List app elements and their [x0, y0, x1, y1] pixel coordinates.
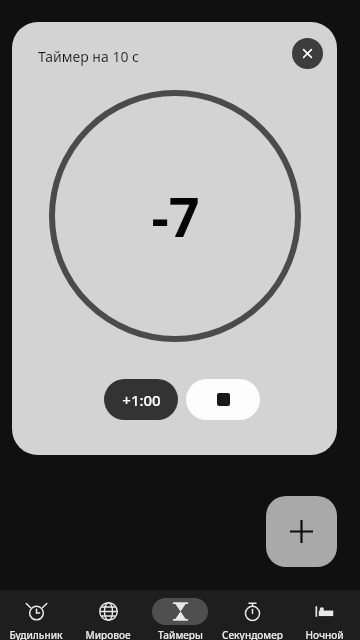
button[interactable]: Add timer [266, 496, 337, 567]
staticText: +1:00 [122, 390, 161, 410]
staticText: Таймеры [158, 628, 203, 640]
button[interactable]: +1:00 [104, 379, 178, 420]
button[interactable]: Ночной [288, 590, 360, 640]
staticText: -7 [151, 179, 200, 253]
button[interactable]: Мировое [72, 590, 144, 640]
staticText: Секундомер [222, 628, 283, 640]
button[interactable]: Таймер на 10 с [12, 22, 337, 455]
staticText: Ночной [305, 628, 344, 640]
button[interactable]: Будильник [0, 590, 72, 640]
staticText: Мировое [85, 628, 131, 640]
staticText: Будильник [9, 628, 63, 640]
button[interactable]: Таймеры [144, 590, 216, 640]
staticText: Таймер на 10 с [38, 47, 139, 66]
button[interactable]: Close [292, 38, 323, 69]
button[interactable]: Stop [186, 379, 260, 420]
button[interactable]: Секундомер [216, 590, 288, 640]
